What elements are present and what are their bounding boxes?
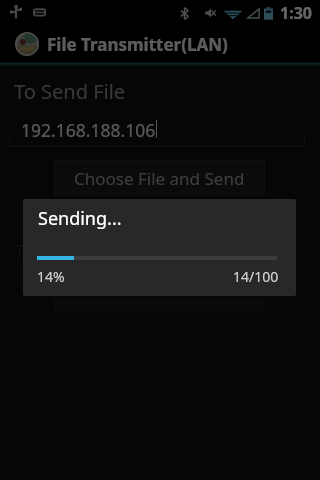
staticText: 14/100 — [233, 267, 279, 286]
staticText: To Send File — [14, 78, 126, 105]
staticText: File Transmitter(LAN) — [47, 33, 228, 56]
staticText: Sending... — [38, 206, 122, 231]
button[interactable]: Choose File and Send — [54, 160, 265, 196]
staticText: To Receive File — [14, 238, 150, 265]
staticText: Choose File and Send — [74, 167, 245, 190]
staticText: 192.168.188.106 — [21, 118, 156, 142]
staticText: 1:30 — [280, 2, 312, 24]
staticText: 14% — [37, 267, 65, 286]
